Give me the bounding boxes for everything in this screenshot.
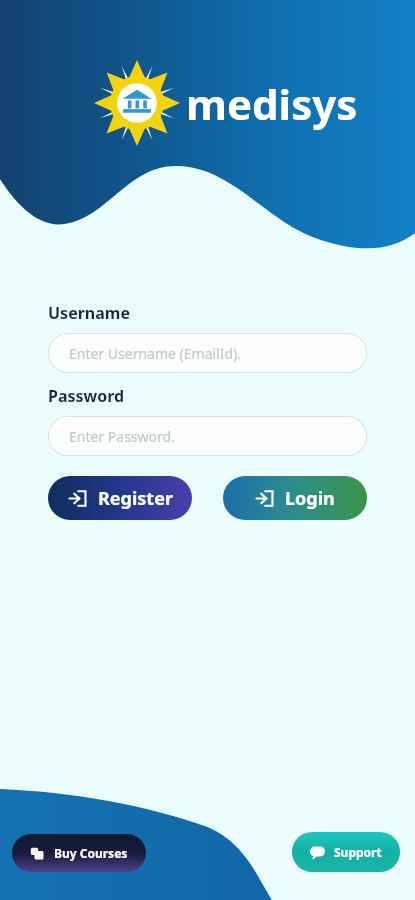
staticText: Enter Password. [69, 427, 175, 446]
staticText: Password [48, 385, 125, 407]
staticText: Buy Courses [54, 845, 128, 861]
staticText: medisys [186, 75, 358, 132]
button[interactable]: Register [48, 476, 192, 520]
button[interactable]: Username input [48, 333, 367, 373]
button[interactable]: Login [223, 476, 367, 520]
staticText: Username [48, 302, 130, 324]
staticText: Enter Username (EmailId). [69, 344, 242, 363]
staticText: Login [285, 486, 335, 511]
button[interactable]: Password input [48, 416, 367, 456]
button[interactable]: Buy Courses [12, 834, 146, 872]
button[interactable]: Support [292, 832, 400, 872]
staticText: Support [334, 844, 382, 860]
staticText: Register [98, 486, 173, 511]
